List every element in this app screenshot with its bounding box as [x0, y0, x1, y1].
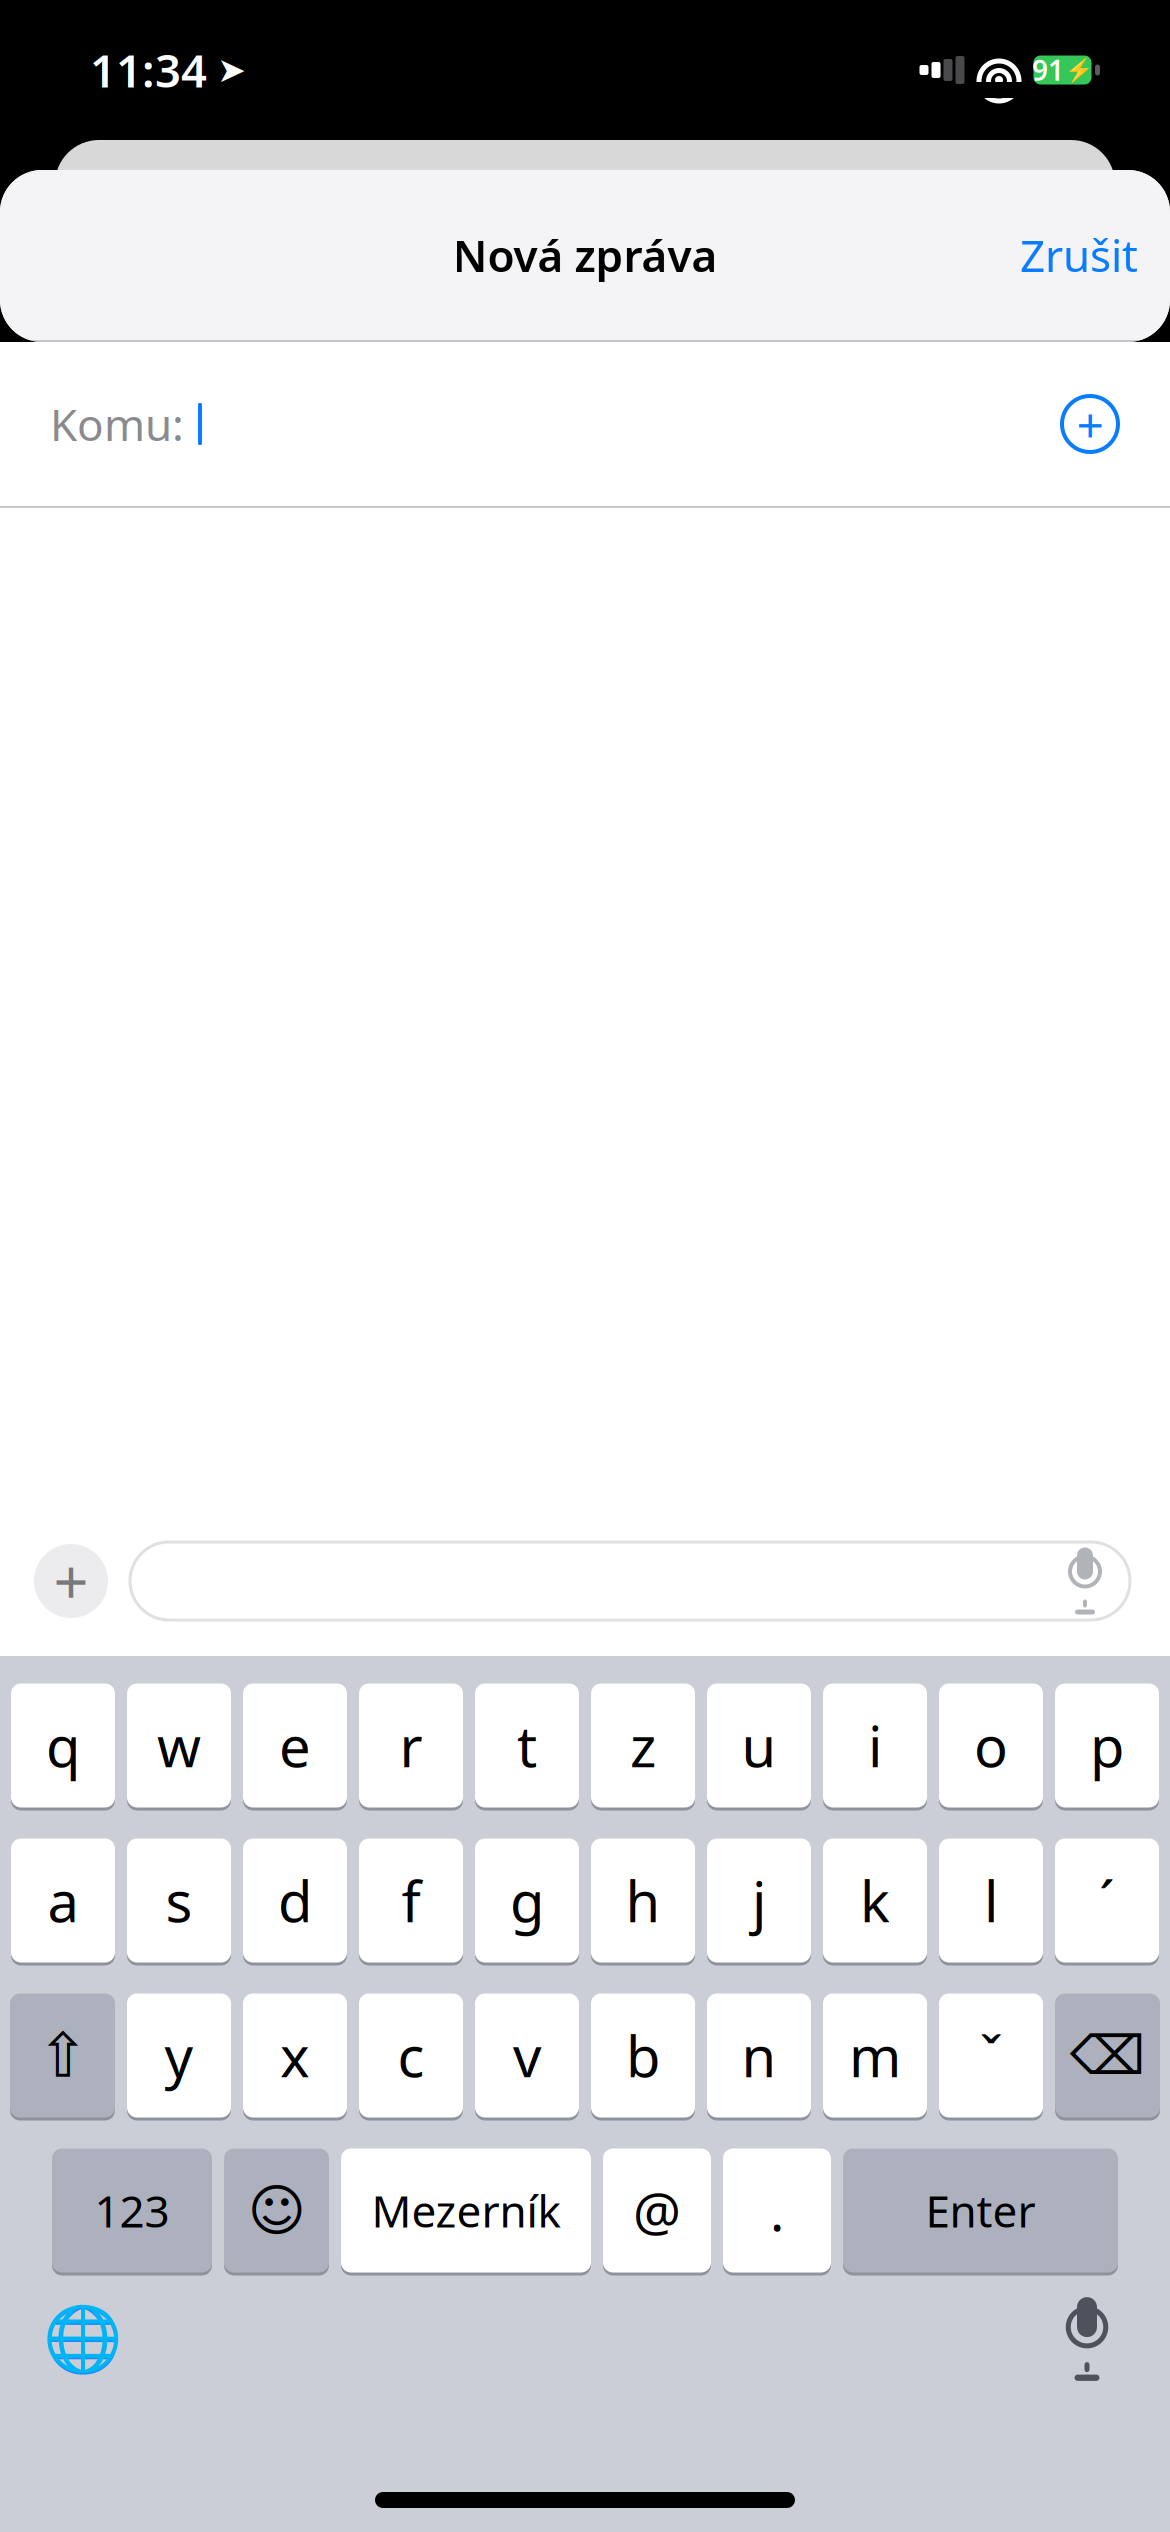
button[interactable]: Enter — [843, 2147, 1118, 2274]
staticText: w — [157, 1708, 201, 1783]
button[interactable]: z — [591, 1682, 695, 1809]
button[interactable]: @ — [603, 2147, 711, 2274]
staticText: h — [625, 1863, 660, 1938]
staticText: Enter — [925, 2181, 1035, 2240]
staticText: 91 — [1032, 51, 1064, 89]
button[interactable]: ˇ — [939, 1992, 1043, 2119]
staticText: l — [984, 1863, 998, 1938]
button[interactable]: p — [1055, 1682, 1159, 1809]
staticText: s — [165, 1863, 192, 1938]
button[interactable]: Přílohy — [34, 1540, 108, 1622]
button[interactable]: e — [243, 1682, 347, 1809]
staticText: b — [626, 2018, 660, 2093]
button[interactable]: v — [475, 1992, 579, 2119]
button[interactable]: Zrušit — [1004, 214, 1154, 296]
button[interactable]: t — [475, 1682, 579, 1809]
button[interactable]: m — [823, 1992, 927, 2119]
button[interactable]: i — [823, 1682, 927, 1809]
staticText: x — [280, 2018, 310, 2093]
staticText: ´ — [1099, 1863, 1115, 1938]
staticText: t — [517, 1708, 537, 1783]
staticText: j — [752, 1863, 766, 1938]
staticText: u — [741, 1708, 776, 1783]
staticText: k — [860, 1863, 890, 1938]
staticText: m — [849, 2018, 901, 2093]
button[interactable]: o — [939, 1682, 1043, 1809]
button[interactable]: u — [707, 1682, 811, 1809]
staticText: @ — [633, 2175, 681, 2246]
staticText: f — [401, 1863, 420, 1938]
staticText: Zrušit — [1020, 226, 1138, 284]
button[interactable]: Mezerník — [341, 2147, 591, 2274]
staticText: v — [513, 2018, 541, 2093]
staticText: z — [630, 1708, 656, 1783]
button[interactable]: Smazat — [1055, 1992, 1160, 2119]
staticText: i — [868, 1708, 882, 1783]
staticText: ➤ — [217, 50, 246, 90]
staticText: Mezerník — [371, 2181, 560, 2240]
staticText: ⇧ — [37, 2021, 88, 2090]
button[interactable]: ☺ — [224, 2147, 329, 2274]
button[interactable]: c — [359, 1992, 463, 2119]
staticText: ˇ — [979, 2018, 1002, 2093]
staticText: c — [397, 2018, 424, 2093]
button[interactable]: s — [127, 1837, 231, 1964]
staticText: r — [399, 1708, 422, 1783]
button[interactable]: a — [11, 1837, 115, 1964]
button[interactable]: 123 — [52, 2147, 212, 2274]
button[interactable]: n — [707, 1992, 811, 2119]
staticText: + — [1076, 392, 1103, 456]
button[interactable]: g — [475, 1837, 579, 1964]
button[interactable]: x — [243, 1992, 347, 2119]
staticText: 🌐 — [43, 2302, 123, 2375]
button[interactable]: Diktování — [1032, 2284, 1142, 2394]
button[interactable]: Přidat kontakt — [1050, 384, 1130, 464]
staticText: ⚡ — [1065, 57, 1093, 83]
button[interactable] — [130, 1542, 1130, 1620]
staticText: d — [278, 1863, 312, 1938]
button[interactable]: . — [723, 2147, 831, 2274]
button[interactable]: ´ — [1055, 1837, 1159, 1964]
button[interactable]: h — [591, 1837, 695, 1964]
button[interactable]: r — [359, 1682, 463, 1809]
staticText: y — [164, 2018, 193, 2093]
staticText: + — [53, 1540, 88, 1622]
staticText: p — [1090, 1708, 1124, 1783]
button[interactable]: f — [359, 1837, 463, 1964]
staticText: Komu: — [50, 395, 184, 453]
staticText: n — [741, 2018, 776, 2093]
button[interactable]: Shift — [10, 1992, 115, 2119]
button[interactable]: j — [707, 1837, 811, 1964]
button[interactable]: l — [939, 1837, 1043, 1964]
staticText: q — [46, 1708, 80, 1783]
button[interactable]: k — [823, 1837, 927, 1964]
staticText: ☺ — [247, 2179, 305, 2242]
staticText: a — [47, 1863, 78, 1938]
button[interactable]: d — [243, 1837, 347, 1964]
staticText: 123 — [94, 2181, 169, 2240]
button[interactable]: y — [127, 1992, 231, 2119]
staticText: g — [510, 1863, 544, 1938]
staticText: 11:34 — [90, 40, 207, 100]
button[interactable]: q — [11, 1682, 115, 1809]
staticText: e — [279, 1708, 311, 1783]
staticText: ⌫ — [1070, 2025, 1145, 2086]
button[interactable]: w — [127, 1682, 231, 1809]
button[interactable]: b — [591, 1992, 695, 2119]
staticText: Nová zpráva — [452, 226, 717, 284]
staticText: o — [974, 1708, 1008, 1783]
button[interactable]: Další klávesnice — [28, 2284, 138, 2394]
staticText: . — [770, 2175, 784, 2246]
